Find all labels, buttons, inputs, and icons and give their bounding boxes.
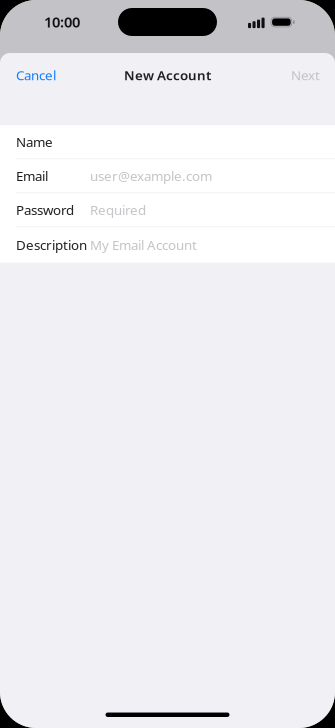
- staticText: 10:00: [44, 12, 80, 31]
- button[interactable]: Next: [281, 53, 335, 97]
- staticText: user@example.com: [90, 167, 212, 185]
- staticText: Description: [16, 236, 87, 254]
- button[interactable]: Description: [0, 227, 335, 262]
- staticText: New Account: [124, 66, 211, 84]
- staticText: Cancel: [16, 66, 56, 84]
- staticText: Name: [16, 133, 53, 151]
- button[interactable]: Email: [0, 159, 335, 193]
- staticText: Next: [291, 66, 320, 84]
- staticText: My Email Account: [90, 236, 197, 254]
- button[interactable]: Name: [0, 125, 335, 159]
- button[interactable]: Password: [0, 193, 335, 227]
- staticText: Email: [16, 167, 48, 185]
- staticText: Required: [90, 201, 146, 219]
- staticText: Password: [16, 201, 74, 219]
- button[interactable]: Cancel: [0, 53, 66, 97]
